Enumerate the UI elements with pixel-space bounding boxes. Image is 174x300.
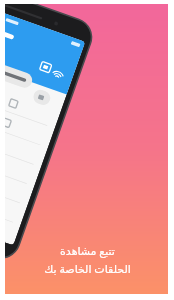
staticText: الحلقات الخاصة بك <box>44 261 131 276</box>
button[interactable]: تتبع مشاهدة <box>0 243 174 276</box>
staticText: تتبع مشاهدة <box>60 243 115 258</box>
button[interactable]: تتبع مشاهدة <box>0 0 174 300</box>
